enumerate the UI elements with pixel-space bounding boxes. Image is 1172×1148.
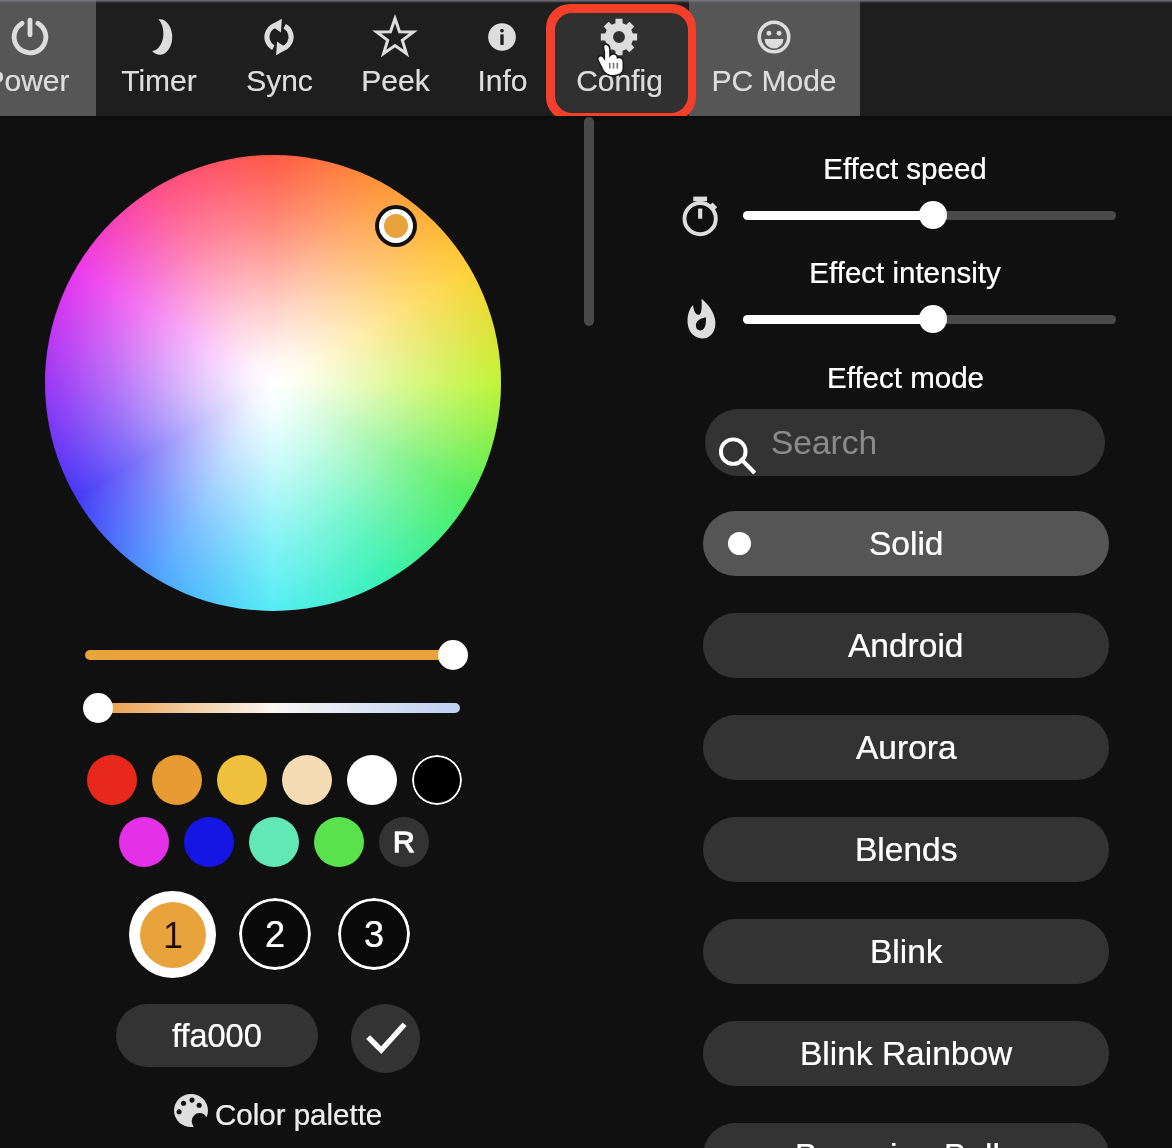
staticText: Effect speed bbox=[823, 152, 987, 185]
staticText: Effect intensity bbox=[809, 256, 1001, 289]
button[interactable]: Search bbox=[705, 409, 1105, 476]
button[interactable] bbox=[0, 0, 96, 117]
button[interactable]: Blink Rainbow bbox=[703, 1021, 1109, 1086]
staticText: Blink bbox=[870, 933, 943, 970]
staticText: Sync bbox=[246, 64, 313, 98]
button[interactable]: Color palette bbox=[172, 1094, 384, 1140]
button[interactable] bbox=[96, 0, 219, 117]
staticText: Power bbox=[0, 64, 70, 98]
button[interactable] bbox=[219, 0, 337, 117]
button[interactable]: R bbox=[379, 817, 429, 867]
staticText: Info bbox=[477, 64, 528, 98]
button[interactable] bbox=[553, 0, 689, 117]
button[interactable]: Color swatch bbox=[119, 817, 169, 867]
button[interactable]: Blink bbox=[703, 919, 1109, 984]
button[interactable] bbox=[452, 0, 553, 117]
button[interactable]: Blends bbox=[703, 817, 1109, 882]
staticText: Blends bbox=[855, 831, 958, 868]
button[interactable]: Apply color bbox=[351, 1004, 420, 1073]
staticText: Peek bbox=[361, 64, 430, 98]
button[interactable]: 3 bbox=[338, 898, 410, 970]
button[interactable] bbox=[689, 0, 860, 117]
button[interactable]: Android bbox=[703, 613, 1109, 678]
button[interactable]: Color swatch bbox=[412, 755, 462, 805]
staticText: Search bbox=[771, 424, 878, 461]
button[interactable]: Color swatch bbox=[347, 755, 397, 805]
button[interactable]: Color swatch bbox=[184, 817, 234, 867]
staticText: 1 bbox=[163, 915, 184, 955]
button[interactable]: Color swatch bbox=[87, 755, 137, 805]
staticText: 3 bbox=[364, 914, 385, 954]
staticText: PC Mode bbox=[711, 64, 837, 98]
button[interactable]: Color swatch bbox=[152, 755, 202, 805]
staticText: 2 bbox=[265, 914, 286, 954]
button[interactable]: Solid bbox=[703, 511, 1109, 576]
staticText: Bouncing Balls bbox=[795, 1137, 1017, 1148]
staticText: Aurora bbox=[856, 729, 957, 766]
staticText: Solid bbox=[869, 525, 944, 562]
staticText: ffa000 bbox=[172, 1018, 262, 1054]
button[interactable] bbox=[85, 650, 458, 660]
button[interactable] bbox=[85, 703, 460, 713]
staticText: Timer bbox=[121, 64, 197, 98]
staticText: Blink Rainbow bbox=[800, 1035, 1013, 1072]
button[interactable] bbox=[337, 0, 452, 117]
staticText: R bbox=[393, 825, 415, 859]
button[interactable]: Bouncing Balls bbox=[703, 1123, 1109, 1148]
staticText: Config bbox=[576, 64, 663, 98]
button[interactable]: ffa000 bbox=[116, 1004, 318, 1067]
button[interactable]: Color swatch bbox=[314, 817, 364, 867]
button[interactable]: Aurora bbox=[703, 715, 1109, 780]
staticText: Android bbox=[848, 627, 964, 664]
button[interactable]: Color swatch bbox=[249, 817, 299, 867]
button[interactable]: 1 bbox=[129, 891, 216, 978]
button[interactable]: Color swatch bbox=[282, 755, 332, 805]
button[interactable]: Color swatch bbox=[217, 755, 267, 805]
staticText: Effect mode bbox=[827, 361, 984, 394]
staticText: Color palette bbox=[215, 1098, 383, 1131]
button[interactable]: 2 bbox=[239, 898, 311, 970]
